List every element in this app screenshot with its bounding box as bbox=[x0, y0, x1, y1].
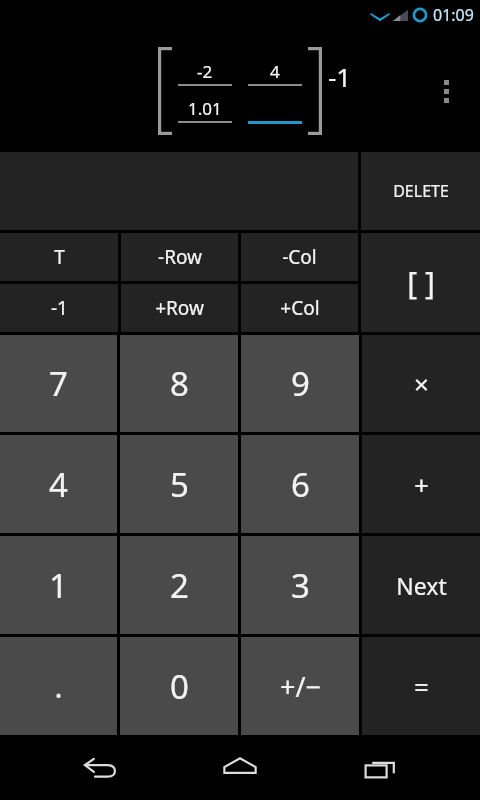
button[interactable]: Recent apps bbox=[340, 738, 420, 798]
staticText: 1.01 bbox=[188, 97, 222, 120]
button[interactable]: 1 bbox=[0, 536, 117, 634]
staticText: +Col bbox=[280, 295, 320, 321]
staticText: × bbox=[414, 366, 429, 401]
staticText: 9 bbox=[291, 361, 310, 406]
staticText: DELETE bbox=[393, 180, 449, 202]
button[interactable]: Back bbox=[60, 738, 140, 798]
button[interactable]: T bbox=[0, 233, 118, 281]
button[interactable]: 2 bbox=[120, 536, 238, 634]
staticText: T bbox=[54, 244, 65, 270]
staticText: +Row bbox=[155, 295, 204, 321]
button[interactable]: +/− bbox=[241, 637, 359, 735]
staticText: 7 bbox=[49, 361, 68, 406]
button[interactable]: . bbox=[0, 637, 117, 735]
button[interactable]: = bbox=[362, 637, 480, 735]
button[interactable]: -Row bbox=[121, 233, 238, 281]
button[interactable]: 4 bbox=[0, 435, 117, 533]
button[interactable]: [ ] bbox=[361, 233, 480, 332]
button[interactable]: 0 bbox=[120, 637, 238, 735]
button[interactable]: -1 bbox=[0, 284, 118, 332]
button[interactable]: +Row bbox=[121, 284, 238, 332]
button[interactable]: 8 bbox=[120, 335, 238, 432]
button[interactable]: 3 bbox=[241, 536, 359, 634]
button[interactable]: More options bbox=[430, 69, 462, 113]
staticText: [ ] bbox=[407, 262, 435, 303]
staticText: 6 bbox=[291, 462, 310, 507]
staticText: 2 bbox=[170, 563, 189, 608]
staticText: 8 bbox=[170, 361, 189, 406]
staticText: Next bbox=[396, 570, 447, 601]
button[interactable]: -Col bbox=[241, 233, 358, 281]
staticText: 1 bbox=[49, 563, 68, 608]
staticText: 4 bbox=[270, 60, 280, 83]
button[interactable]: 7 bbox=[0, 335, 117, 432]
staticText: + bbox=[414, 467, 429, 502]
button[interactable]: 9 bbox=[241, 335, 359, 432]
staticText: 0 bbox=[170, 664, 189, 709]
button[interactable]: DELETE bbox=[361, 152, 480, 230]
button[interactable]: Next bbox=[362, 536, 480, 634]
staticText: -1 bbox=[51, 295, 68, 321]
button[interactable]: Home bbox=[200, 738, 280, 798]
staticText: 01:09 bbox=[433, 4, 474, 26]
button[interactable]: +Col bbox=[241, 284, 358, 332]
button[interactable]: 6 bbox=[241, 435, 359, 533]
staticText: 4 bbox=[49, 462, 68, 507]
staticText: . bbox=[54, 666, 63, 707]
button[interactable]: 5 bbox=[120, 435, 238, 533]
staticText: -2 bbox=[197, 60, 213, 83]
staticText: = bbox=[414, 669, 429, 704]
staticText: +/− bbox=[280, 668, 321, 705]
staticText: 5 bbox=[170, 462, 189, 507]
button[interactable]: × bbox=[362, 335, 480, 432]
staticText: -Row bbox=[158, 244, 202, 270]
staticText: -Col bbox=[282, 244, 317, 270]
staticText: -1 bbox=[328, 59, 352, 94]
button[interactable]: + bbox=[362, 435, 480, 533]
staticText: 3 bbox=[291, 563, 310, 608]
